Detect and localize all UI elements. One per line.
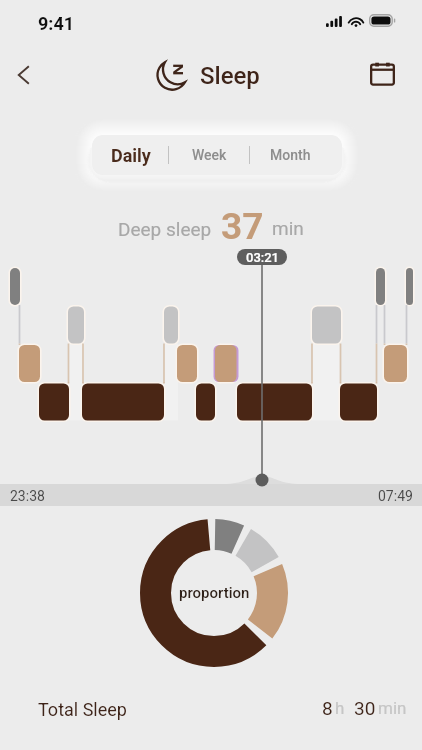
- staticText: 37: [221, 205, 264, 243]
- staticText: Week: [192, 147, 227, 163]
- staticText: min: [272, 217, 304, 239]
- staticText: Month: [270, 147, 311, 163]
- staticText: 30: [354, 697, 376, 719]
- button[interactable]: Calendar: [362, 53, 402, 93]
- button[interactable]: Month: [250, 135, 331, 175]
- staticText: Daily: [111, 145, 151, 166]
- staticText: 8: [322, 697, 333, 719]
- staticText: h: [335, 698, 345, 718]
- button[interactable]: Daily: [92, 135, 169, 175]
- staticText: Total Sleep: [38, 699, 127, 720]
- staticText: proportion: [179, 584, 250, 602]
- staticText: 9:41: [38, 13, 75, 34]
- staticText: Deep sleep: [118, 218, 212, 240]
- staticText: Sleep: [200, 62, 260, 90]
- staticText: min: [378, 698, 407, 718]
- button[interactable]: Back: [4, 55, 44, 95]
- staticText: 23:38: [10, 488, 45, 504]
- staticText: 03:21: [246, 250, 279, 265]
- staticText: 07:49: [378, 488, 413, 504]
- button[interactable]: Week: [169, 135, 249, 175]
